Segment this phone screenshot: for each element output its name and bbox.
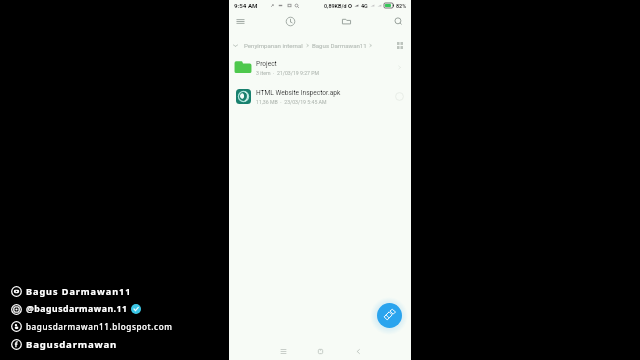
staticText: 9:54 AM	[234, 2, 258, 9]
staticText: bagusdarmawan11.blogspot.com	[26, 321, 173, 332]
button[interactable]: Recent apps	[274, 342, 292, 360]
staticText: Bagus Darmawan11	[26, 285, 132, 297]
button[interactable]: Clean up storage	[377, 303, 402, 328]
staticText: Project	[256, 60, 277, 68]
button[interactable]: Recent files	[280, 11, 301, 32]
button[interactable]: @bagusdarmawan.11	[11, 303, 141, 315]
button[interactable]: Back	[349, 342, 367, 360]
staticText: 4G	[361, 3, 368, 9]
button[interactable]: Change view	[394, 39, 406, 51]
button[interactable]: Penyimpanan internal	[232, 36, 406, 54]
button[interactable]: Categories	[336, 11, 357, 32]
staticText: Penyimpanan internal	[244, 42, 303, 49]
button[interactable]: HTML Website Inspector.apk	[236, 82, 406, 111]
button[interactable]: Bagusdarmawan	[11, 338, 118, 350]
staticText: Bagus Darmawan11	[312, 42, 367, 49]
staticText: 11,36 MB · 23/03/19 5:45 AM	[256, 99, 327, 105]
staticText: 82%	[396, 3, 407, 9]
button[interactable]: Search	[388, 11, 409, 32]
staticText: 0,89KB/d	[324, 3, 347, 9]
button[interactable]: Home	[311, 342, 329, 360]
staticText: HTML Website Inspector.apk	[256, 89, 341, 97]
staticText: Bagusdarmawan	[26, 338, 118, 350]
button[interactable]: Bagus Darmawan11	[11, 285, 132, 297]
button[interactable]: bagusdarmawan11.blogspot.com	[11, 320, 173, 332]
button[interactable]: Project	[234, 53, 406, 82]
button[interactable]: Select file	[395, 92, 404, 101]
staticText: @bagusdarmawan.11	[26, 303, 128, 315]
staticText: 3 item · 21/03/19 9:27 PM	[256, 70, 320, 76]
button[interactable]: Menu	[230, 11, 251, 32]
